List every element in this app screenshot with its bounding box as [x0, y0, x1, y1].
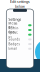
- staticText: Email: [8, 47, 17, 51]
- button[interactable]: Badges: [6, 42, 34, 46]
- staticText: Reminders: [8, 26, 19, 34]
- button[interactable]: Updates: [6, 32, 34, 37]
- staticText: below: [15, 4, 25, 9]
- button[interactable]: Email: [6, 46, 34, 51]
- staticText: Messages: [8, 21, 18, 29]
- staticText: Badges: [8, 42, 19, 46]
- button[interactable]: Sounds: [6, 37, 34, 42]
- staticText: Sounds: [8, 37, 19, 41]
- staticText: Edit settings: [10, 0, 30, 4]
- staticText: Updates: [8, 31, 18, 38]
- staticText: Settings: [8, 17, 21, 22]
- button[interactable]: Messages: [6, 23, 34, 28]
- button[interactable]: Reminders: [6, 28, 34, 32]
